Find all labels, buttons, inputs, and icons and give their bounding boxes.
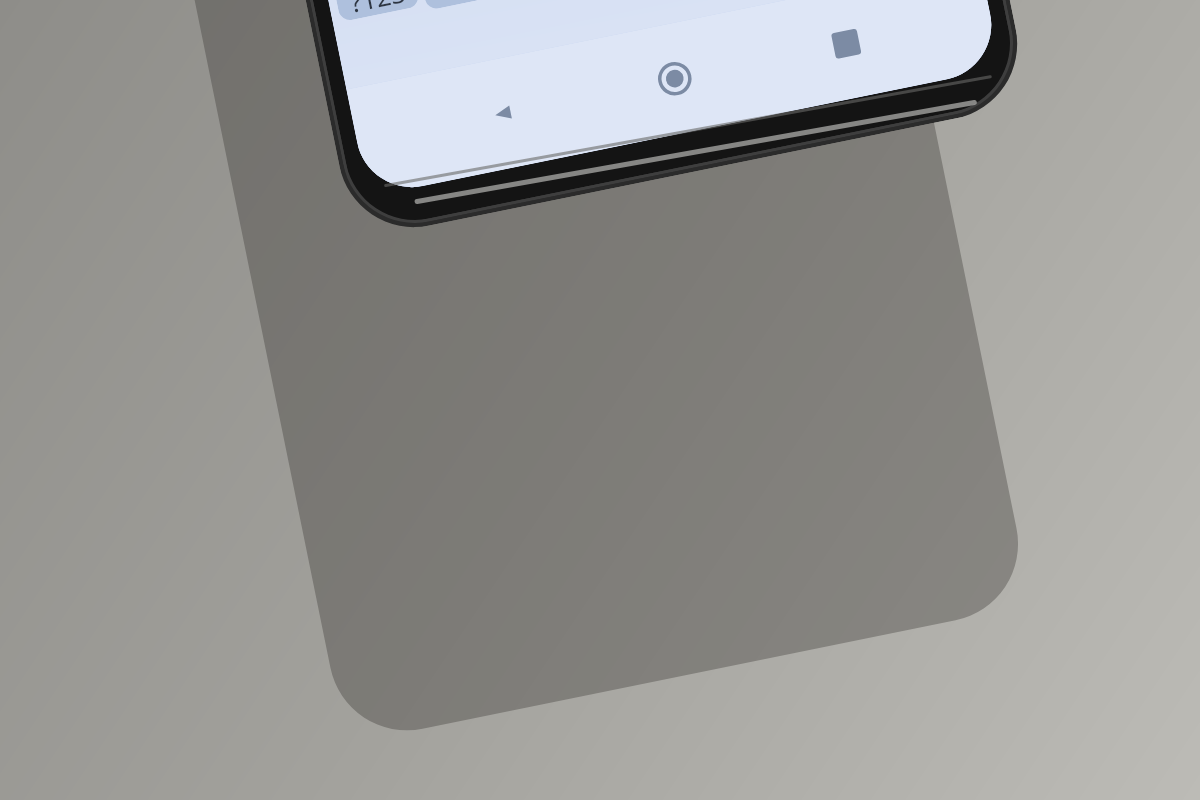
button[interactable]: Back	[405, 42, 599, 185]
staticText: @	[436, 0, 470, 7]
button[interactable]: Home	[578, 7, 771, 150]
button[interactable]: @	[419, 0, 486, 11]
button[interactable]: Recent apps	[749, 0, 942, 115]
button[interactable]: ?123	[334, 0, 420, 22]
staticText: ?123	[347, 0, 408, 20]
